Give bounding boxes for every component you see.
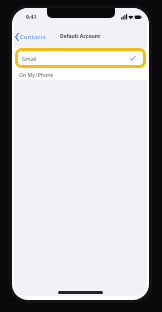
button[interactable]: Gmail: [12, 48, 149, 67]
button[interactable]: On My iPhone: [12, 67, 149, 80]
staticText: Gmail: [22, 55, 37, 62]
staticText: Default Account: [60, 33, 101, 40]
staticText: 9:41: [26, 13, 37, 20]
button[interactable]: Contacts: [13, 31, 53, 43]
staticText: Contacts: [20, 33, 47, 41]
staticText: On My iPhone: [19, 71, 54, 78]
